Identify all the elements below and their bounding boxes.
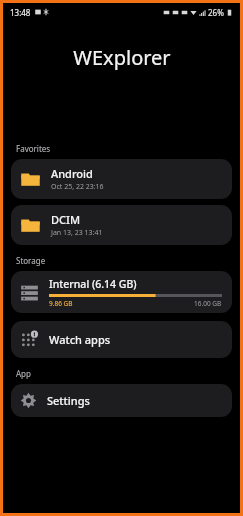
staticText: Storage (16, 255, 46, 266)
staticText: App (16, 368, 31, 379)
staticText: 16.00 GB (194, 299, 222, 308)
button[interactable]: Settings (11, 384, 232, 417)
button[interactable]: Android (11, 159, 232, 199)
button[interactable]: DCIM (11, 205, 232, 245)
staticText: 26% (208, 7, 224, 18)
staticText: DCIM (51, 212, 81, 227)
button[interactable]: Watch apps (11, 321, 232, 358)
staticText: 13:48 (10, 7, 31, 18)
staticText: Android (51, 166, 93, 181)
staticText: 9.86 GB (49, 299, 73, 308)
staticText: WExplorer (73, 44, 171, 71)
staticText: Internal (6.14 GB) (49, 277, 137, 291)
staticText: Favorites (16, 143, 51, 154)
staticText: Settings (47, 393, 90, 408)
staticText: Watch apps (49, 332, 111, 347)
button[interactable]: Internal (6.14 GB) (11, 271, 232, 313)
staticText: Oct 25, 22 23:16 (51, 182, 104, 192)
staticText: Jan 13, 23 13:41 (51, 228, 103, 238)
